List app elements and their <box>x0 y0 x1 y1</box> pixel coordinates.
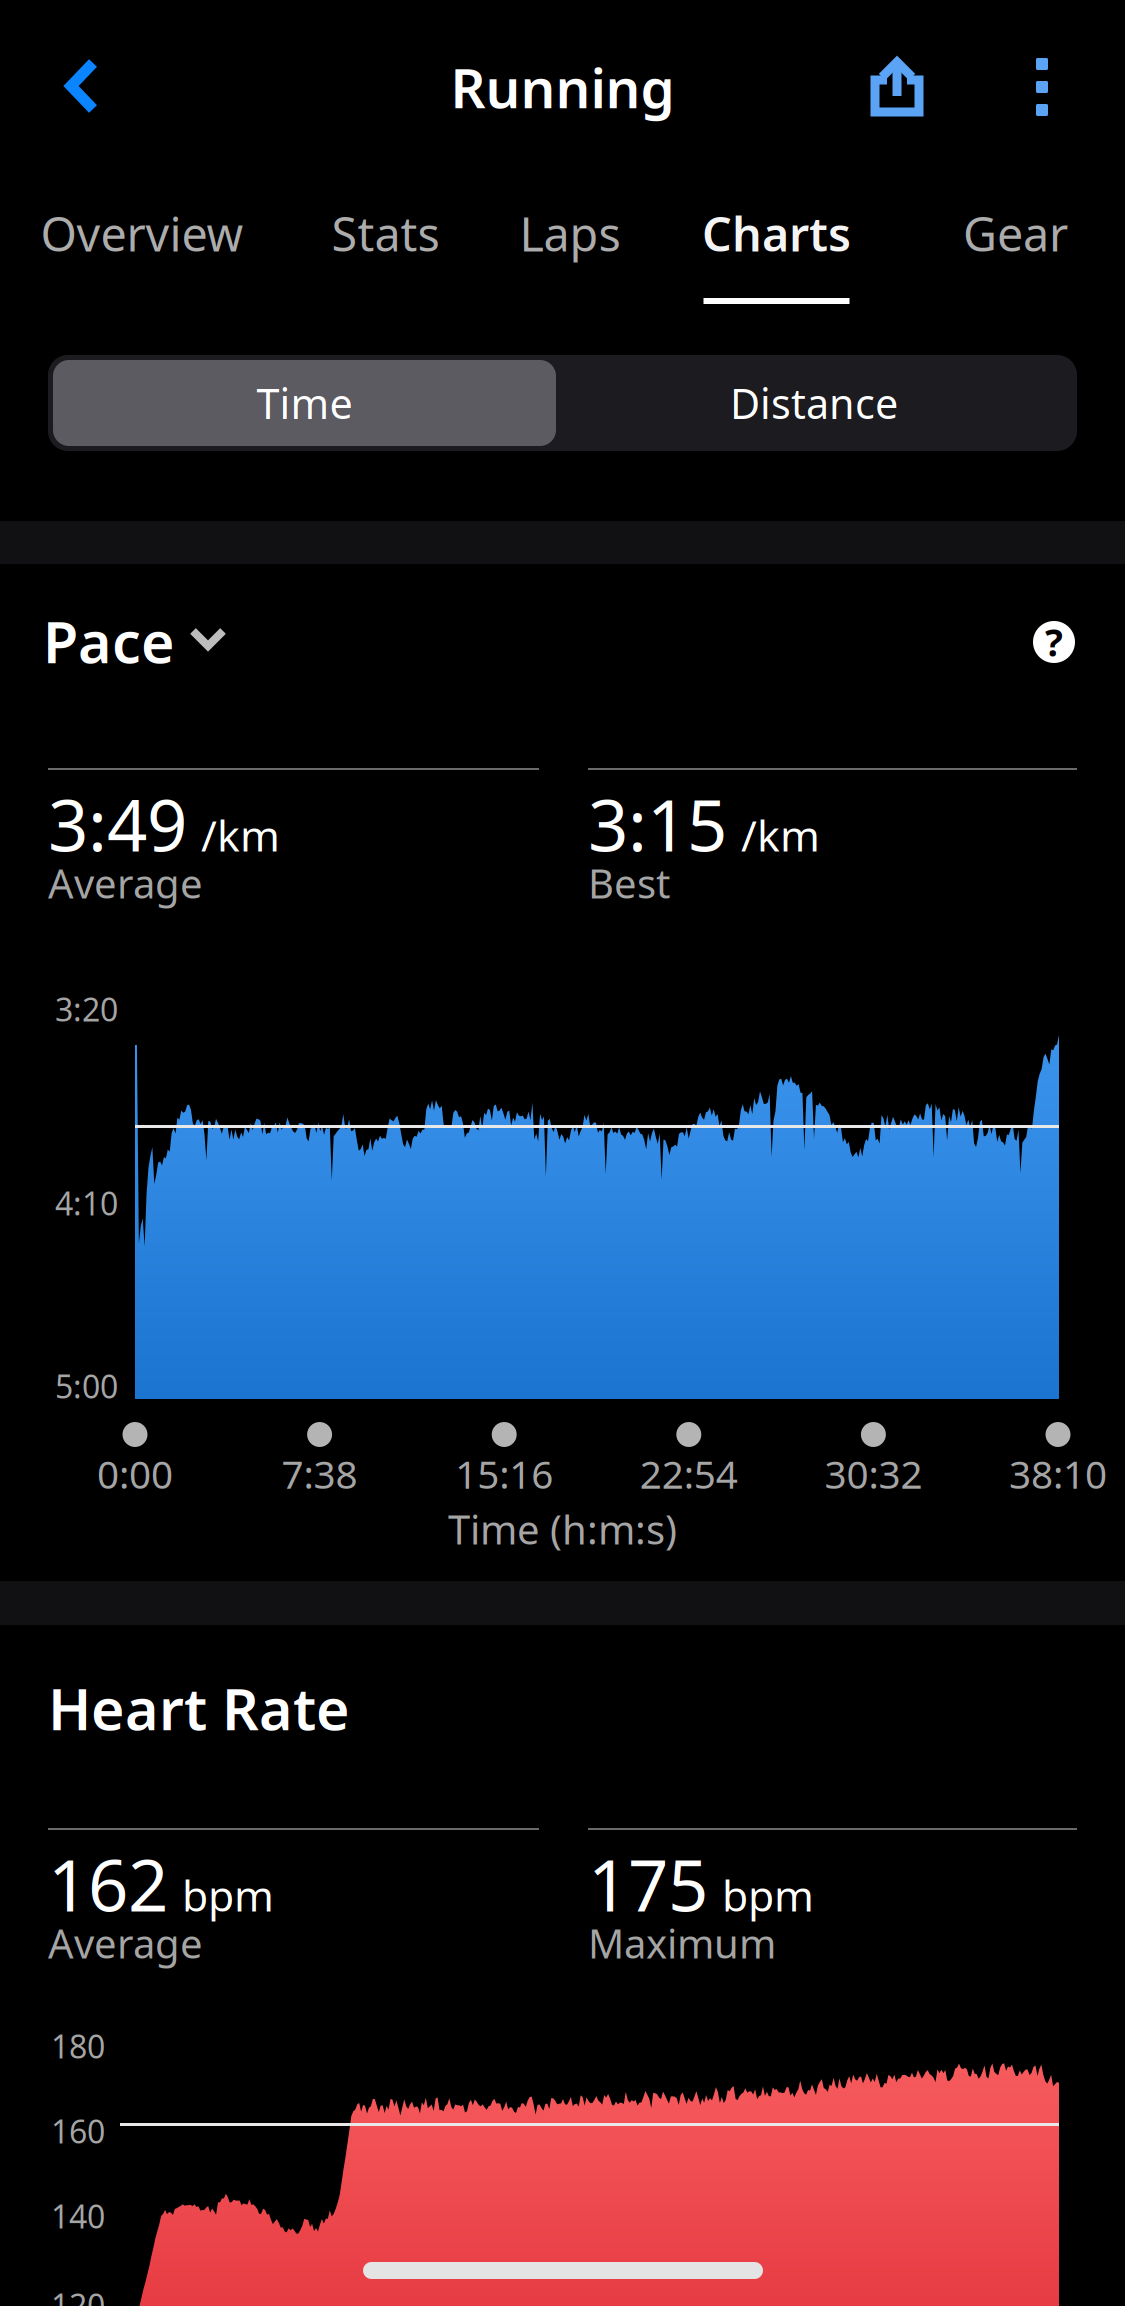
staticText: 162 <box>48 1837 168 1931</box>
staticText: 30:32 <box>824 1448 922 1499</box>
button[interactable]: More options <box>986 0 1098 174</box>
staticText: 22:54 <box>640 1448 738 1499</box>
staticText: Distance <box>730 376 898 430</box>
staticText: bpm <box>722 1866 814 1923</box>
staticText: Running <box>450 51 674 123</box>
button[interactable]: Laps <box>478 169 662 316</box>
staticText: 38:10 <box>1009 1448 1107 1499</box>
staticText: 120 <box>51 2284 105 2306</box>
staticText: Laps <box>519 202 620 264</box>
staticText: 15:16 <box>455 1448 553 1499</box>
staticText: bpm <box>182 1866 274 1923</box>
button[interactable]: Charts <box>658 169 895 316</box>
staticText: 3:20 <box>55 988 118 1030</box>
staticText: 160 <box>51 2110 105 2152</box>
button[interactable]: Gear <box>900 169 1125 316</box>
staticText: 175 <box>588 1837 708 1931</box>
button[interactable]: Help <box>1033 621 1075 663</box>
staticText: Time <box>256 376 352 430</box>
staticText: 5:00 <box>55 1365 118 1407</box>
staticText: /km <box>741 806 820 863</box>
staticText: Pace <box>43 603 175 679</box>
staticText: 7:38 <box>282 1448 358 1499</box>
staticText: Overview <box>40 202 243 264</box>
staticText: Gear <box>963 202 1068 264</box>
staticText: Stats <box>331 202 439 264</box>
button[interactable]: Back <box>0 0 166 174</box>
staticText: 0:00 <box>97 1448 173 1499</box>
staticText: Charts <box>702 202 851 264</box>
staticText: 3:15 <box>588 777 727 871</box>
staticText: 4:10 <box>55 1182 118 1224</box>
button[interactable]: Overview <box>0 169 284 316</box>
button[interactable]: Pace <box>43 606 228 676</box>
button[interactable]: Stats <box>291 169 480 316</box>
staticText: Best <box>588 856 670 909</box>
staticText: Time (h:m:s) <box>448 1502 677 1555</box>
staticText: Heart Rate <box>48 1670 350 1746</box>
staticText: Average <box>48 1916 203 1969</box>
button[interactable]: Share <box>838 0 956 174</box>
staticText: ? <box>1045 617 1063 667</box>
button[interactable]: Time <box>53 360 556 446</box>
staticText: Maximum <box>588 1916 776 1969</box>
button[interactable]: Distance <box>556 360 1072 446</box>
staticText: 3:49 <box>48 777 187 871</box>
staticText: 180 <box>51 2025 105 2067</box>
staticText: 140 <box>51 2195 105 2237</box>
staticText: /km <box>201 806 280 863</box>
staticText: Average <box>48 856 203 909</box>
